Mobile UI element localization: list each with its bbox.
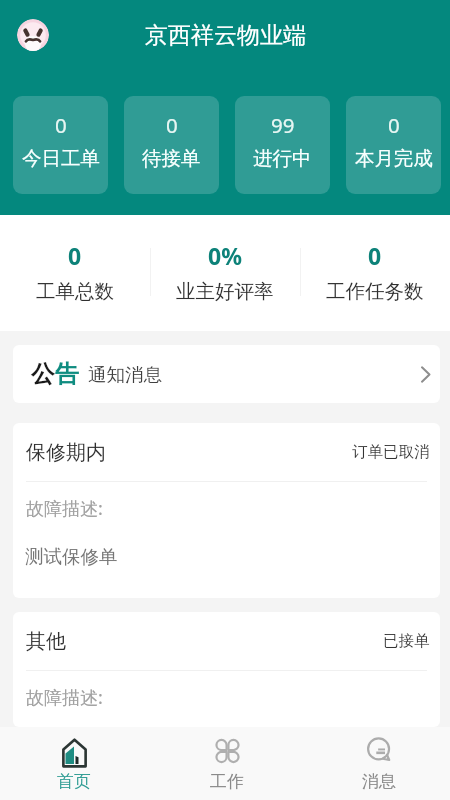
button[interactable]: 0%: [150, 215, 300, 331]
staticText: 工单总数: [36, 279, 114, 304]
staticText: 业主好评率: [176, 279, 274, 304]
other: Open notices: [420, 366, 431, 383]
staticText: 今日工单: [22, 146, 100, 171]
staticText: 待接单: [142, 146, 201, 171]
button[interactable]: 其他: [13, 612, 440, 727]
button[interactable]: 0: [0, 215, 150, 331]
staticText: 本月完成: [355, 146, 433, 171]
button[interactable]: 首页: [0, 727, 150, 800]
staticText: 0: [166, 111, 178, 139]
staticText: 进行中: [253, 146, 312, 171]
staticText: 测试保修单: [25, 545, 118, 568]
staticText: 京西祥云物业端: [145, 21, 306, 50]
button[interactable]: 保修期内: [13, 423, 440, 598]
button[interactable]: 工作: [150, 727, 300, 800]
button[interactable]: 0: [13, 96, 108, 194]
staticText: 0: [68, 240, 82, 271]
staticText: 0%: [208, 240, 242, 271]
staticText: 工作: [210, 771, 244, 792]
staticText: 已接单: [383, 631, 430, 651]
staticText: 99: [271, 111, 295, 139]
staticText: 故障描述:: [26, 496, 103, 521]
staticText: 订单已取消: [352, 442, 430, 462]
staticText: 消息: [362, 771, 396, 792]
staticText: 工作任务数: [326, 279, 424, 304]
staticText: 其他: [26, 629, 66, 654]
button[interactable]: 0: [124, 96, 219, 194]
button[interactable]: 0: [346, 96, 441, 194]
staticText: 首页: [57, 771, 91, 792]
staticText: 公: [31, 359, 55, 389]
button[interactable]: 公: [13, 345, 440, 403]
staticText: 0: [55, 111, 67, 139]
button[interactable]: 0: [300, 215, 450, 331]
staticText: 故障描述:: [26, 685, 103, 710]
staticText: 保修期内: [26, 440, 106, 465]
staticText: 0: [388, 111, 400, 139]
staticText: 告: [55, 359, 79, 389]
button[interactable]: 99: [235, 96, 330, 194]
staticText: 通知消息: [88, 363, 162, 386]
button[interactable]: Profile: [17, 19, 49, 51]
staticText: 0: [368, 240, 382, 271]
button[interactable]: 消息: [300, 727, 450, 800]
